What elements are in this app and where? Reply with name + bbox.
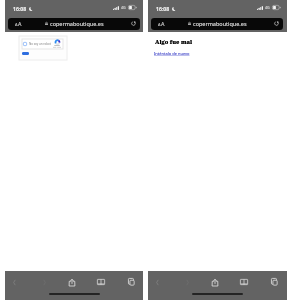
- button[interactable]: Reload: [128, 19, 138, 29]
- staticText: No soy un robot: [29, 42, 51, 46]
- staticText: 4G: [121, 5, 126, 10]
- staticText: 16:08: [13, 5, 27, 12]
- button[interactable]: [22, 52, 29, 55]
- staticText: 16:08: [156, 5, 170, 12]
- staticText: Algo fue mal: [155, 38, 193, 46]
- button[interactable]: Reload: [271, 19, 281, 29]
- button[interactable]: Tabs: [265, 274, 283, 290]
- button[interactable]: No soy un robot: [22, 39, 63, 49]
- button[interactable]: Share: [206, 274, 224, 290]
- button[interactable]: Bookmarks: [92, 274, 110, 290]
- button[interactable]: Page settings: [158, 18, 174, 30]
- staticText: A: [15, 22, 18, 27]
- button[interactable]: Share: [63, 274, 81, 290]
- staticText: Inténtalo de nuevo: [154, 51, 190, 56]
- staticText: copermaboutique.es: [193, 20, 247, 27]
- staticText: Inténtalo de nuevo: [154, 51, 190, 56]
- staticText: copermaboutique.es: [50, 20, 104, 27]
- button[interactable]: Bookmarks: [235, 274, 253, 290]
- button[interactable]: Inténtalo de nuevo: [154, 51, 190, 56]
- button[interactable]: Page settings: [15, 18, 31, 30]
- staticText: A: [161, 20, 165, 27]
- button[interactable]: Tabs: [122, 274, 140, 290]
- staticText: Algo fue mal: [155, 38, 193, 46]
- staticText: A: [18, 20, 22, 27]
- staticText: 4G: [265, 5, 270, 10]
- staticText: A: [158, 22, 161, 27]
